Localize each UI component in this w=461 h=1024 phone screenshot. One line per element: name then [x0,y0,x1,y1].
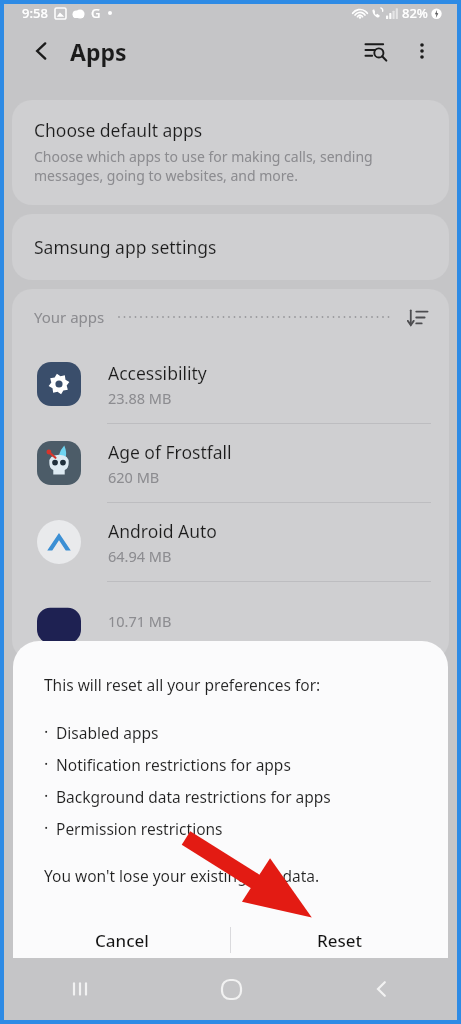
staticText: 9:58 [22,4,48,22]
button[interactable]: Back [354,961,410,1017]
staticText: Accessibility [108,361,207,385]
staticText: · [44,785,49,807]
staticText: Apps [70,36,127,67]
button[interactable]: Back [26,35,58,67]
staticText: Cancel [95,929,149,952]
staticText: Choose which apps to use for making call… [34,147,373,185]
staticText: Samsung app settings [34,235,217,259]
staticText: This will reset all your preferences for… [44,674,321,695]
staticText: · [44,817,49,839]
button[interactable]: Choose default apps [12,100,449,205]
button[interactable]: Accessibility [12,345,449,423]
staticText: Android Auto [108,519,217,543]
button[interactable]: Sort [401,301,433,333]
staticText: Age of Frostfall [108,440,232,464]
staticText: Permission restrictions [56,818,223,839]
staticText: You won't lose your existing app data. [44,865,320,886]
staticText: · [44,721,49,743]
button[interactable]: Reset [231,912,448,968]
button[interactable]: 10.71 MB [12,582,449,660]
button[interactable]: Recents [52,961,108,1017]
staticText: Choose default apps [34,118,203,142]
staticText: · [44,753,49,775]
button[interactable]: Search [357,32,395,70]
staticText: Notification restrictions for apps [56,754,291,775]
staticText: Disabled apps [56,722,159,743]
staticText: 82% [402,4,428,22]
button[interactable]: Home [203,961,259,1017]
button[interactable]: Android Auto [12,503,449,581]
button[interactable]: Age of Frostfall [12,424,449,502]
staticText: 10.71 MB [108,611,172,631]
staticText: G [91,4,101,22]
button[interactable]: More options [405,34,439,68]
staticText: 23.88 MB [108,388,172,408]
button[interactable]: Samsung app settings [12,214,449,280]
staticText: 64.94 MB [108,546,172,566]
button[interactable]: Cancel [13,912,230,968]
staticText: Background data restrictions for apps [56,786,331,807]
staticText: 620 MB [108,467,160,487]
staticText: Reset [317,929,363,952]
staticText: Your apps [34,307,105,327]
